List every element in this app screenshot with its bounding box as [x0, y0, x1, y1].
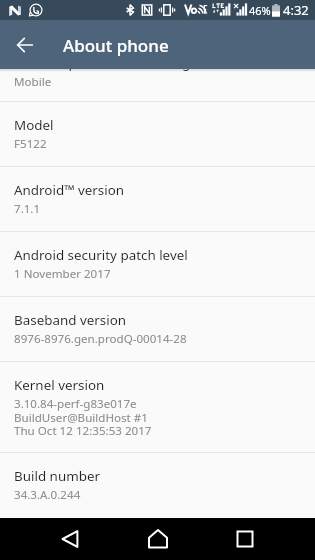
staticText: 4:32 [283, 1, 309, 19]
button[interactable]: Model [0, 102, 315, 166]
staticText: Model [14, 116, 54, 134]
staticText: About phone [63, 34, 169, 57]
button[interactable]: Mobile operator and settings [0, 41, 315, 101]
button[interactable]: Build number [0, 453, 315, 517]
button[interactable]: Recent apps [223, 518, 267, 560]
staticText: Build number [14, 467, 100, 485]
button[interactable]: Baseband version [0, 297, 315, 361]
staticText: 8976-8976.gen.prodQ-00014-28 [14, 331, 187, 347]
staticText: 1 November 2017 [14, 266, 111, 282]
staticText: Baseband version [14, 311, 127, 329]
staticText: Kernel version [14, 376, 105, 394]
button[interactable]: Back [48, 518, 92, 560]
staticText: 3.10.84-perf-g83e017e BuildUser@BuildHos… [14, 396, 152, 438]
button[interactable]: Android security patch level [0, 232, 315, 296]
staticText: Mobile [14, 74, 52, 90]
staticText: Mobile operator and settings [14, 54, 197, 72]
staticText: F5122 [14, 136, 47, 152]
staticText: 34.3.A.0.244 [14, 487, 81, 503]
button[interactable]: Android™ version [0, 167, 315, 231]
staticText: Android™ version [14, 181, 125, 199]
button[interactable]: Back [3, 23, 47, 67]
staticText: Android security patch level [14, 246, 188, 264]
staticText: 46% [249, 3, 271, 18]
button[interactable]: Kernel version [0, 362, 315, 452]
button[interactable]: Home [136, 518, 180, 560]
staticText: 7.1.1 [14, 201, 41, 217]
